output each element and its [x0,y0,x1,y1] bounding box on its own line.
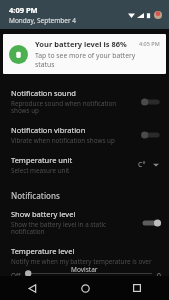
button[interactable]: Toggle on [139,217,161,229]
staticText: 4:05 PM [139,40,160,47]
button[interactable]: Show battery level [0,204,169,241]
button[interactable]: Notification vibration [0,120,169,150]
staticText: Reproduce sound when notification shows … [11,99,135,115]
staticText: Select measure unit [11,166,70,175]
staticText: Notifications [11,190,60,201]
staticText: Show battery level [11,209,76,219]
staticText: Notify me when my battery temperature is… [11,257,152,266]
staticText: Show the battery level in a static notif… [11,220,135,236]
button[interactable]: Temperature unit [0,150,169,180]
staticText: Movistar [71,265,98,274]
staticText: Your battery level is 86% [35,39,127,49]
staticText: Monday, September 4 [9,16,77,25]
staticText: C° [138,160,146,170]
button[interactable]: Your battery level is 86% [3,34,166,74]
staticText: Notification sound [11,88,76,98]
staticText: 4:09 PM [9,5,38,15]
staticText: Notification vibration [11,125,86,135]
staticText: 0 [157,271,161,276]
button[interactable]: Toggle off [139,96,161,108]
button[interactable]: Back [22,278,42,298]
button[interactable]: Recent apps [127,278,147,298]
button[interactable]: Off [11,271,161,276]
button[interactable]: Toggle off [139,129,161,141]
staticText: Vibrate when notification shows up [11,136,115,145]
staticText: Off [11,271,21,276]
staticText: Temperature unit [11,155,73,165]
staticText: Temperature level [11,246,75,256]
button[interactable]: Notification sound [0,83,169,120]
button[interactable]: Home [75,278,95,298]
staticText: Tap to see more of your battery status [35,51,136,69]
